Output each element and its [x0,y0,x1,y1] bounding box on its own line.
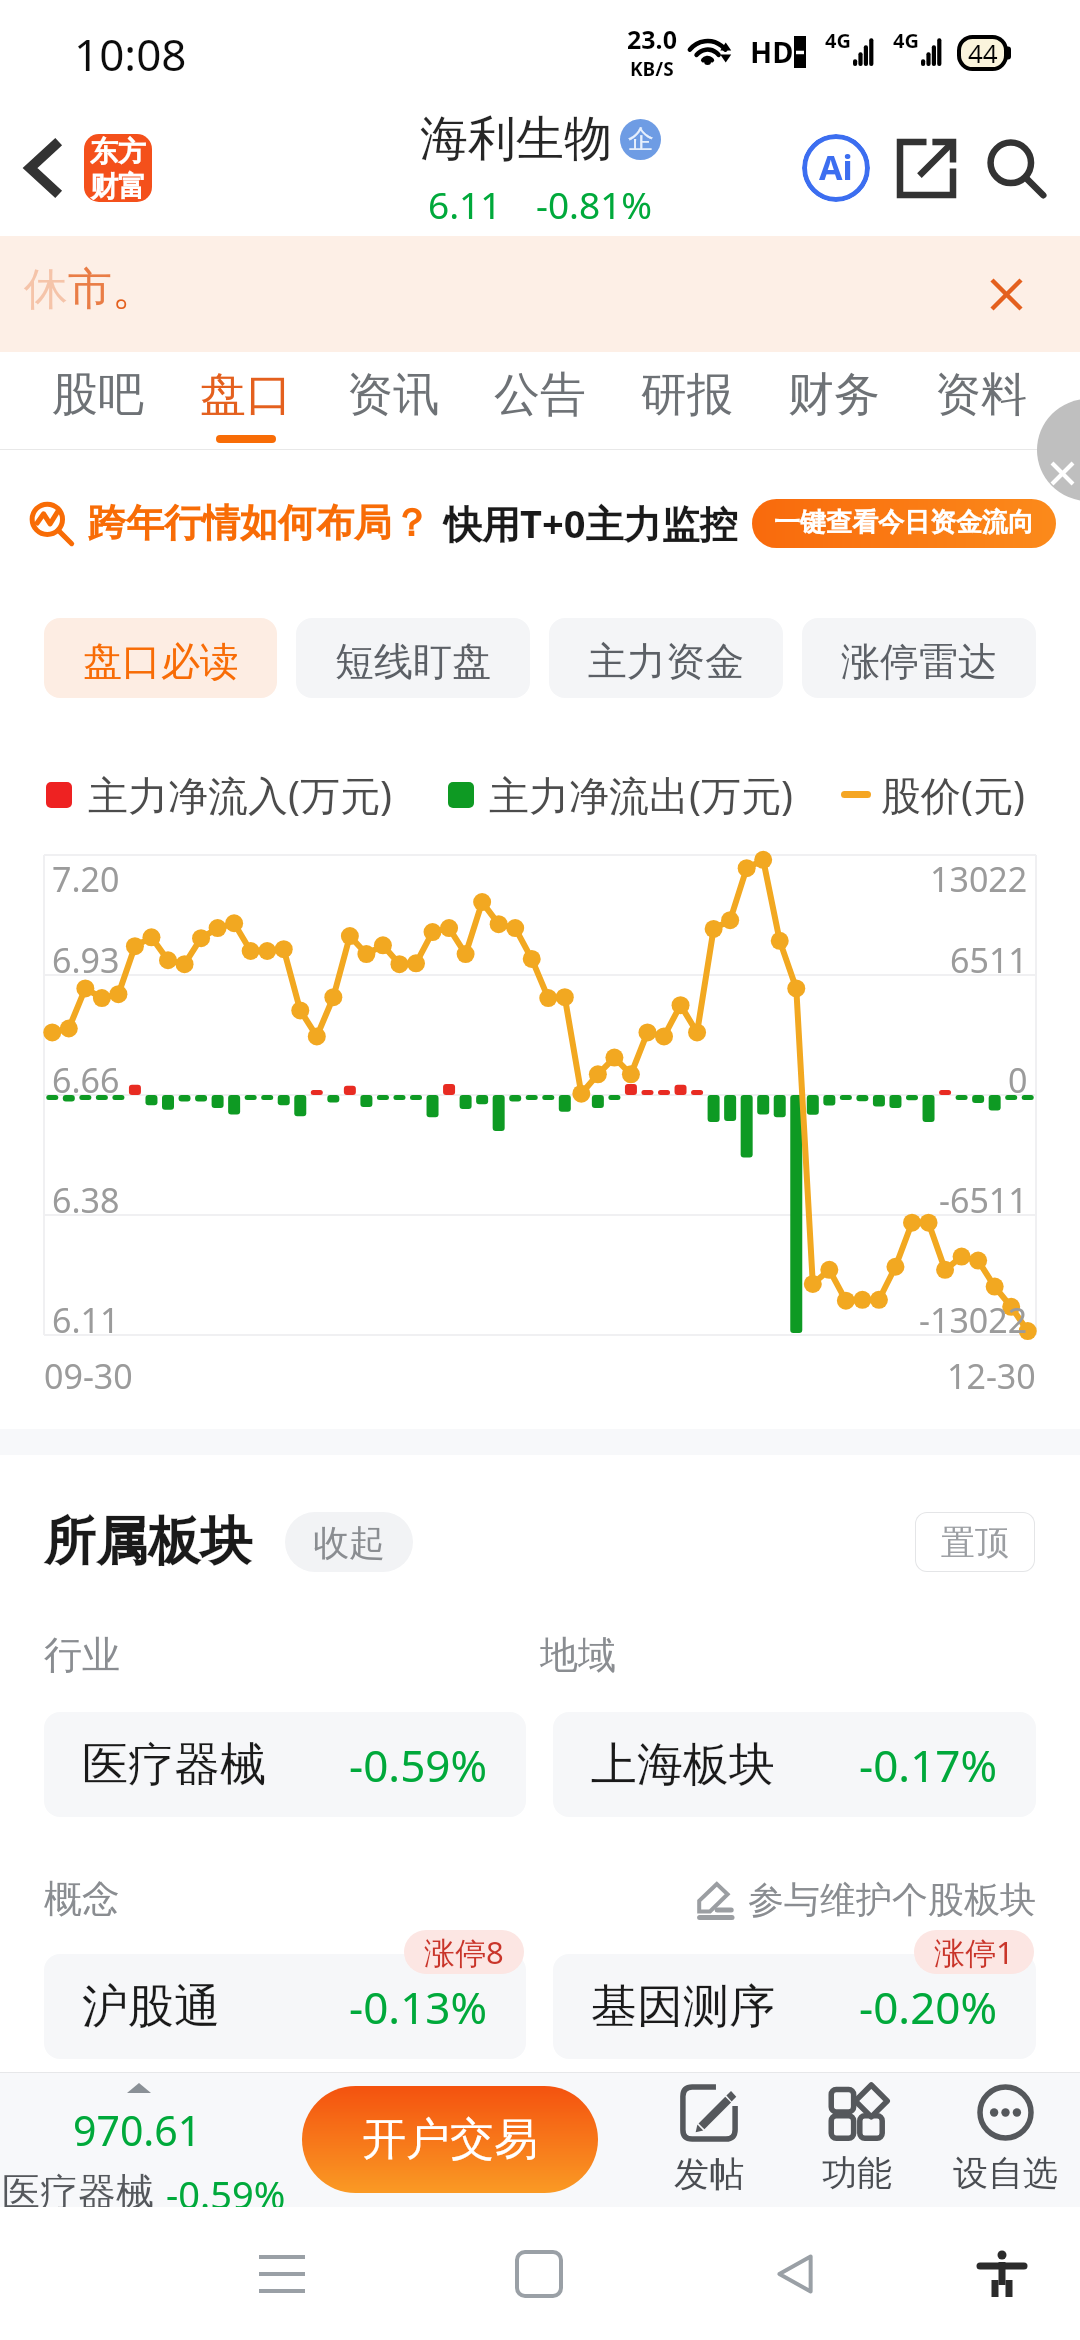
staticText: 海利生物 [420,109,612,169]
staticText: 主力净流入(万元) [88,767,392,822]
button[interactable]: Share [881,123,971,213]
staticText: 休 [24,262,68,317]
staticText: 23.0 [627,22,677,56]
staticText: 盘口 [200,366,292,424]
button[interactable]: 盘口 [172,352,319,450]
button[interactable]: Recents [240,2232,324,2316]
button[interactable]: 置顶 [915,1512,1035,1572]
staticText: 6.93 [52,937,120,983]
staticText: 涨停8 [424,1931,504,1973]
staticText: 功能 [822,2151,892,2195]
button[interactable]: 医疗器械 [82,1712,488,1817]
button[interactable]: 参与维护个股板块 [696,1877,1036,1922]
button[interactable]: 跨年行情如何布局？ [28,497,1080,549]
staticText: 资讯 [347,366,439,424]
staticText: KB/S [630,56,674,82]
staticText: -6511 [939,1177,1028,1223]
staticText: 发帖 [674,2152,744,2196]
button[interactable]: 资讯 [319,352,466,450]
staticText: -0.59% [166,2168,286,2207]
button[interactable]: 功能 [783,2072,931,2207]
staticText: 盘口必读 [83,637,239,686]
button[interactable]: Close notice [970,258,1042,330]
staticText: 东方 [90,134,146,169]
staticText: 跨年行情如何布局？ [88,499,430,547]
button[interactable]: 开户交易 [302,2086,598,2193]
staticText: 10:08 [74,24,187,84]
staticText: -0.17% [859,1735,998,1795]
staticText: 一键查看今日资金流向 [774,506,1034,539]
staticText: 4G [825,27,851,54]
button[interactable]: Home [497,2232,581,2316]
staticText: 设自选 [953,2151,1058,2195]
button[interactable]: 资料 [907,352,1054,450]
staticText: HD [750,32,794,71]
staticText: 主力资金 [588,637,744,686]
button[interactable]: Close ad [1028,455,1080,505]
staticText: 涨停1 [934,1931,1014,1973]
button[interactable]: 主力资金 [549,618,783,698]
staticText: 4G [893,27,919,54]
staticText: 6511 [950,937,1028,983]
staticText: 6.11 [52,1297,120,1343]
button[interactable]: 公告 [466,352,613,450]
button[interactable]: Accessibility [960,2232,1044,2316]
button[interactable]: Search [971,123,1061,213]
staticText: 所属板块 [44,1509,252,1575]
button[interactable]: 涨停雷达 [802,618,1036,698]
staticText: -0.13% [349,1977,488,2037]
staticText: 6.11 [428,179,502,229]
button[interactable]: 设自选 [931,2072,1079,2207]
staticText: 6.66 [52,1057,120,1103]
button[interactable]: 研报 [613,352,760,450]
staticText: 。 [112,262,156,317]
button[interactable]: Back [2,128,82,208]
button[interactable]: 基因测序 [591,1954,998,2059]
staticText: 7.20 [52,856,120,902]
staticText: 股价(元) [881,767,1025,822]
staticText: 开户交易 [362,2112,538,2167]
staticText: 公告 [494,366,586,424]
staticText: 快用T+0主力监控 [444,497,738,549]
staticText: Ai [819,144,853,190]
staticText: 970.61 [73,2102,202,2158]
staticText: 主力净流出(万元) [489,767,793,822]
staticText: 地域 [540,1631,1036,1679]
staticText: -0.20% [859,1977,998,2037]
button[interactable]: 盘口必读 [44,618,277,698]
button[interactable]: AI assistant [791,123,881,213]
staticText: 研报 [641,366,733,424]
button[interactable]: 沪股通 [82,1954,488,2059]
staticText: 股吧 [52,366,144,424]
staticText: 医疗器械 [2,2168,154,2207]
staticText: 企 [628,123,654,156]
staticText: 6.38 [52,1177,120,1223]
staticText: 沪股通 [82,1978,220,2036]
button[interactable]: 短线盯盘 [296,618,530,698]
staticText: 短线盯盘 [335,637,491,686]
button[interactable]: 财务 [760,352,907,450]
staticText: 0 [1008,1057,1028,1103]
button[interactable]: 发帖 [635,2072,783,2207]
button[interactable]: Back [753,2232,837,2316]
staticText: 行业 [44,1631,540,1679]
button[interactable]: East Money [84,134,152,202]
staticText: 财务 [788,366,880,424]
button[interactable]: 一键查看今日资金流向 [774,499,1034,548]
button[interactable]: 收起 [285,1512,413,1572]
staticText: 医疗器械 [82,1736,266,1794]
staticText: 13022 [930,856,1028,902]
staticText: 12-30 [947,1353,1036,1399]
button[interactable]: 股吧 [24,352,172,450]
staticText: 基因测序 [591,1978,775,2036]
staticText: 09-30 [44,1353,133,1399]
staticText: 市 [68,262,112,317]
staticText: 参与维护个股板块 [748,1877,1036,1922]
button[interactable]: 970.61 [0,2072,286,2207]
staticText: 概念 [44,1875,120,1923]
button[interactable]: 上海板块 [591,1712,998,1817]
staticText: 涨停雷达 [841,637,997,686]
staticText: 收起 [313,1520,385,1565]
staticText: -13022 [919,1297,1028,1343]
staticText: 置顶 [941,1521,1009,1564]
